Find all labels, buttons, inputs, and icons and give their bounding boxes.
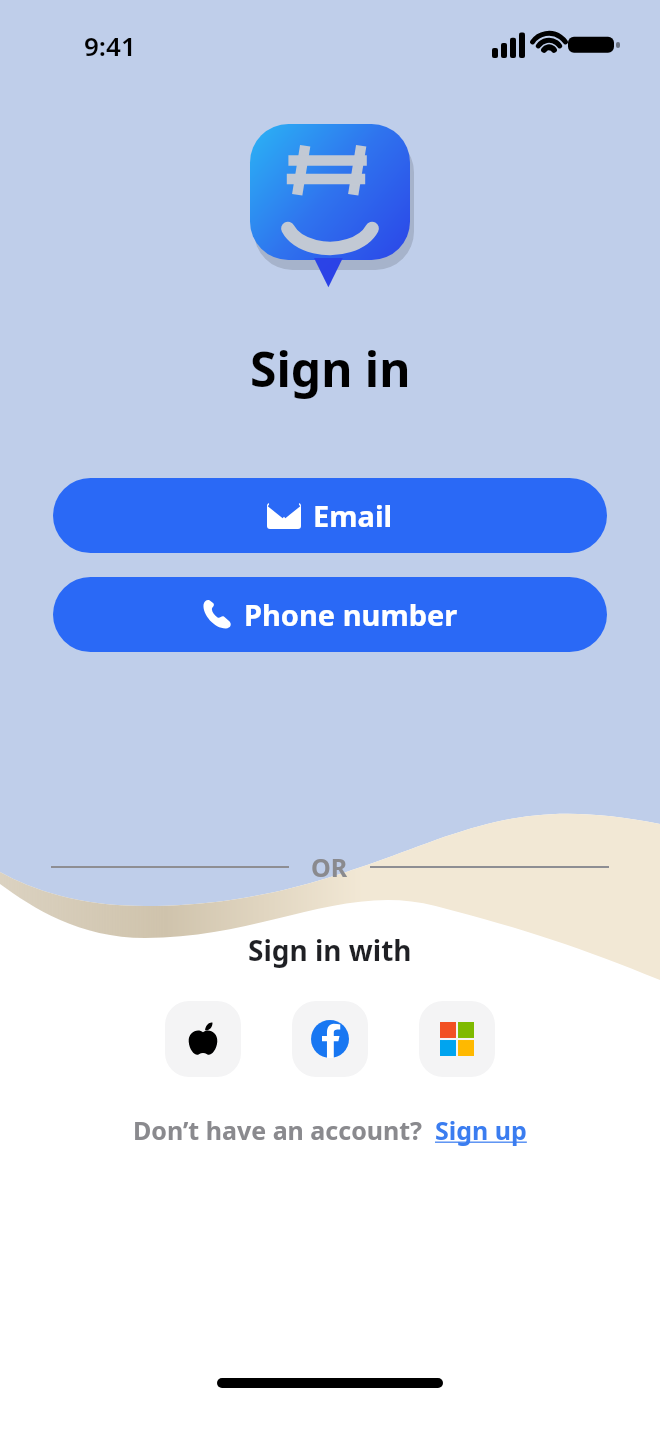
button[interactable]: Sign in with Facebook (292, 1001, 368, 1077)
staticText: Email (313, 496, 393, 535)
button[interactable]: Phone number (53, 577, 607, 652)
staticText: 9:41 (84, 28, 136, 63)
button[interactable]: Sign in with Apple (165, 1001, 241, 1077)
button[interactable]: Sign up (435, 1113, 527, 1147)
staticText: Sign in with (248, 931, 412, 969)
staticText: OR (311, 850, 348, 884)
staticText: Phone number (244, 595, 458, 634)
button[interactable]: Email (53, 478, 607, 553)
staticText: Sign in (250, 336, 411, 401)
staticText: Don’t have an account? (133, 1113, 423, 1147)
staticText: Sign up (435, 1113, 527, 1147)
button[interactable]: Sign in with Microsoft (419, 1001, 495, 1077)
